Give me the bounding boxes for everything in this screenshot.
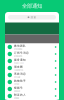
staticText: 微信团队 [14, 44, 26, 47]
staticText: 服务通知 [14, 58, 26, 61]
staticText: 附近的人 [14, 93, 26, 96]
button[interactable]: 系统消息 [5, 71, 59, 78]
button[interactable]: 微信团队 [5, 43, 59, 50]
staticText: 发现新朋友 [14, 97, 19, 99]
button[interactable]: 附近的人 [5, 92, 59, 99]
staticText: 你已开启消息通知 [14, 48, 22, 50]
staticText: 视频号 [14, 86, 23, 89]
staticText: 安全中心提醒 [14, 76, 20, 78]
staticText: 每日精选内容更新 [14, 55, 22, 57]
button[interactable]: 视频号 [5, 85, 59, 92]
staticText: 订阅号消息 [14, 51, 29, 54]
staticText: 朋友圈 [14, 65, 23, 68]
staticText: 3 位朋友更新了动态 [14, 69, 23, 71]
staticText: 系统消息 [14, 72, 26, 75]
staticText: 有新的关注者 [14, 90, 20, 92]
button[interactable]: 订阅号消息 [5, 50, 59, 57]
staticText: 支付成功 ¥128.00 [14, 62, 24, 64]
button[interactable]: 服务通知 [5, 57, 59, 64]
button[interactable]: 朋友圈 [5, 64, 59, 71]
staticText: 订单已发货 [14, 83, 19, 85]
staticText: 全部通知 [22, 3, 42, 9]
staticText: 购物助手 [14, 79, 26, 82]
button[interactable]: 购物助手 [5, 78, 59, 85]
staticText: 搜索 [30, 16, 36, 19]
